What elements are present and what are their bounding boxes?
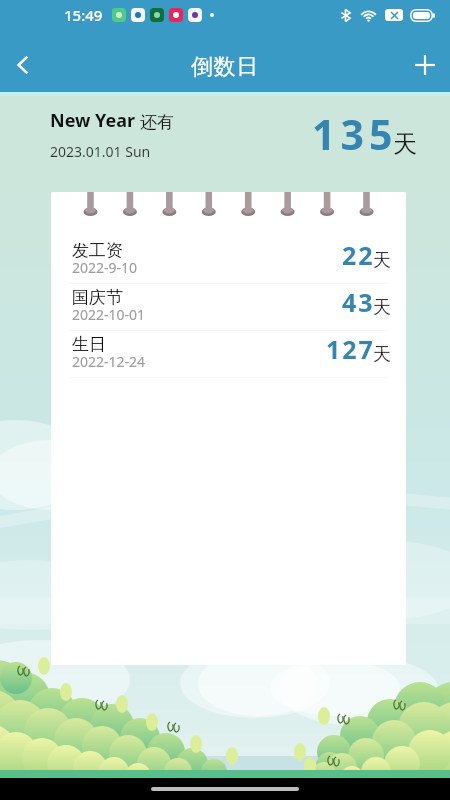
staticText: 生日 [72, 334, 106, 355]
staticText: 天 [373, 296, 391, 319]
staticText: 2022-10-01 [72, 305, 146, 324]
staticText: 135 [312, 106, 398, 162]
staticText: 倒数日 [191, 53, 259, 81]
staticText: 天 [373, 343, 391, 366]
button[interactable]: Back [1, 43, 45, 87]
button[interactable]: Add [403, 43, 447, 87]
staticText: 2022-9-10 [72, 258, 138, 277]
staticText: 2023.01.01 Sun [50, 142, 151, 161]
staticText: 还有 [140, 112, 174, 133]
button[interactable]: 发工资 [51, 237, 406, 283]
staticText: 2022-12-24 [72, 352, 146, 371]
staticText: New Year [50, 108, 140, 133]
staticText: 国庆节 [72, 287, 123, 308]
staticText: 天 [373, 249, 391, 272]
staticText: 22 [342, 238, 375, 272]
staticText: 43 [342, 285, 375, 319]
button[interactable]: 生日 [51, 331, 406, 377]
staticText: 发工资 [72, 240, 123, 261]
staticText: 15:49 [64, 5, 103, 25]
staticText: 127 [326, 332, 375, 366]
button[interactable]: 国庆节 [51, 284, 406, 330]
staticText: 天 [393, 129, 417, 159]
